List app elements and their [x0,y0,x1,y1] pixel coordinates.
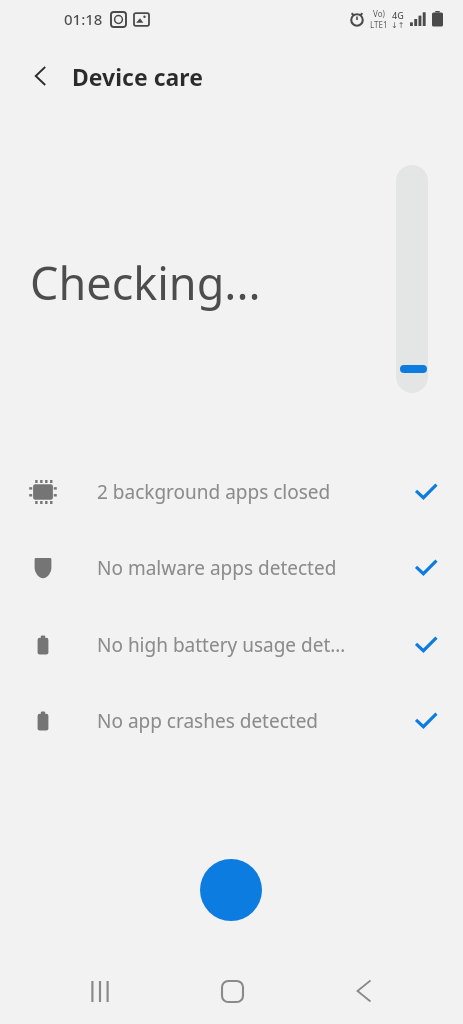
staticText: No malware apps detected [97,555,337,581]
staticText: No high battery usage det… [97,632,346,658]
button[interactable]: Back [24,59,58,93]
button[interactable]: Optimize now [200,859,262,921]
button[interactable]: Recent apps [68,959,132,1023]
button[interactable]: No high battery usage det… [0,625,463,665]
staticText: Checking... [30,252,261,313]
button[interactable]: No malware apps detected [0,548,463,588]
button[interactable]: 2 background apps closed [0,472,463,512]
staticText: LTE1 [370,19,388,30]
staticText: 01:18 [64,9,103,29]
staticText: ↓↑ [391,21,405,30]
staticText: Device care [72,61,203,92]
button[interactable]: Back [331,959,395,1023]
staticText: Vo) [373,8,385,19]
button[interactable]: No app crashes detected [0,701,463,741]
staticText: 2 background apps closed [97,479,331,505]
staticText: 4G [392,9,404,21]
staticText: No app crashes detected [97,708,319,734]
button[interactable]: Home [200,959,264,1023]
